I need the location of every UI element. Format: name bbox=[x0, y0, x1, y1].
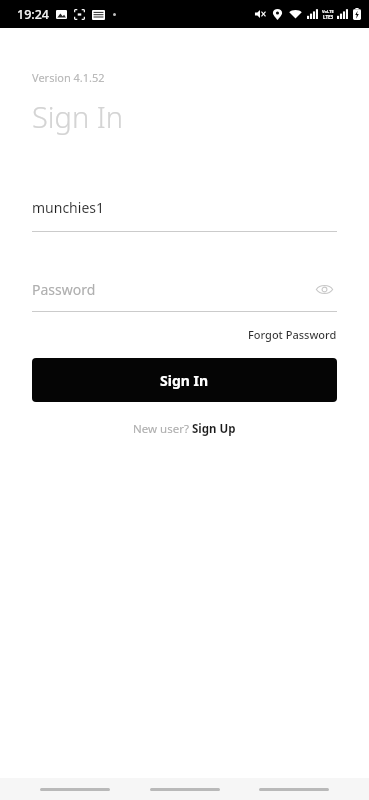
staticText: LTE3 bbox=[323, 14, 334, 20]
staticText: Sign Up bbox=[192, 421, 236, 437]
button[interactable]: Navigation button bbox=[150, 780, 220, 798]
staticText: Password bbox=[32, 280, 96, 299]
button[interactable]: Navigation button bbox=[259, 780, 329, 798]
staticText: Sign In bbox=[32, 97, 124, 136]
button[interactable]: Show password bbox=[311, 276, 337, 302]
staticText: New user? bbox=[133, 421, 192, 437]
staticText: munchies1 bbox=[32, 198, 104, 217]
button[interactable]: Forgot Password bbox=[248, 325, 337, 344]
button[interactable]: Password bbox=[32, 274, 337, 304]
staticText: Sign In bbox=[160, 371, 209, 390]
staticText: VoLTE bbox=[322, 9, 334, 14]
button[interactable]: Navigation button bbox=[40, 780, 110, 798]
staticText: 19:24 bbox=[17, 6, 50, 23]
button[interactable]: munchies1 bbox=[32, 192, 337, 222]
staticText: Forgot Password bbox=[248, 327, 337, 342]
staticText: Version 4.1.52 bbox=[32, 70, 105, 85]
button[interactable]: Sign Up bbox=[192, 421, 236, 437]
button[interactable]: Sign In bbox=[32, 358, 337, 402]
